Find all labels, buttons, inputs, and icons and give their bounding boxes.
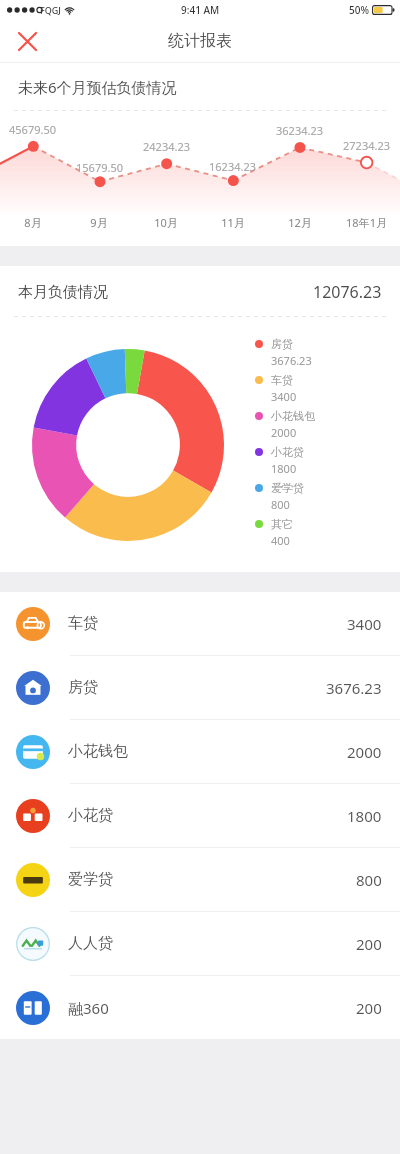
staticText: 未来6个月预估负债情况: [18, 77, 177, 97]
staticText: 27234.23: [343, 138, 390, 153]
button[interactable]: 融360: [0, 976, 400, 1039]
staticText: 小花贷: [68, 806, 113, 825]
button[interactable]: Close: [9, 23, 45, 59]
staticText: 9:41 AM: [181, 3, 220, 17]
staticText: 车贷: [68, 614, 98, 633]
staticText: 12076.23: [313, 281, 382, 303]
staticText: 200: [356, 934, 382, 954]
staticText: 小花钱包: [271, 409, 315, 423]
staticText: 15679.50: [76, 160, 123, 175]
staticText: 36234.23: [276, 123, 323, 138]
staticText: 200: [356, 998, 382, 1018]
staticText: 10月: [154, 215, 178, 230]
staticText: 8月: [24, 215, 42, 230]
staticText: 爱学贷: [271, 481, 304, 495]
staticText: 400: [271, 533, 290, 548]
button[interactable]: 小花贷: [0, 784, 400, 847]
staticText: 800: [271, 497, 290, 512]
staticText: 其它: [271, 517, 293, 531]
staticText: 24234.23: [143, 139, 190, 154]
button[interactable]: 小花钱包: [0, 720, 400, 783]
staticText: 1800: [347, 806, 382, 826]
staticText: FQGJ: [40, 4, 61, 16]
staticText: 统计报表: [168, 31, 232, 51]
staticText: 3676.23: [326, 678, 382, 698]
staticText: 3676.23: [271, 353, 312, 368]
staticText: 3400: [271, 389, 297, 404]
staticText: 800: [356, 870, 382, 890]
staticText: 16234.23: [209, 159, 256, 174]
staticText: 小花钱包: [68, 742, 128, 761]
staticText: 爱学贷: [68, 870, 113, 889]
staticText: 11月: [221, 215, 245, 230]
staticText: 18年1月: [346, 215, 387, 230]
staticText: 1800: [271, 461, 297, 476]
staticText: 3400: [347, 614, 382, 634]
staticText: 车贷: [271, 373, 293, 387]
staticText: 2000: [271, 425, 297, 440]
button[interactable]: 爱学贷: [0, 848, 400, 911]
staticText: 人人贷: [68, 934, 113, 953]
staticText: 小花贷: [271, 445, 304, 459]
staticText: 45679.50: [9, 122, 56, 137]
staticText: 房贷: [68, 678, 98, 697]
staticText: 2000: [347, 742, 382, 762]
staticText: 本月负债情况: [18, 283, 108, 302]
staticText: 12月: [288, 215, 312, 230]
button[interactable]: 人人贷: [0, 912, 400, 975]
staticText: 9月: [90, 215, 108, 230]
button[interactable]: 车贷: [0, 592, 400, 655]
button[interactable]: 房贷: [0, 656, 400, 719]
staticText: 融360: [68, 998, 109, 1018]
staticText: 50%: [349, 3, 369, 17]
staticText: 房贷: [271, 337, 293, 351]
